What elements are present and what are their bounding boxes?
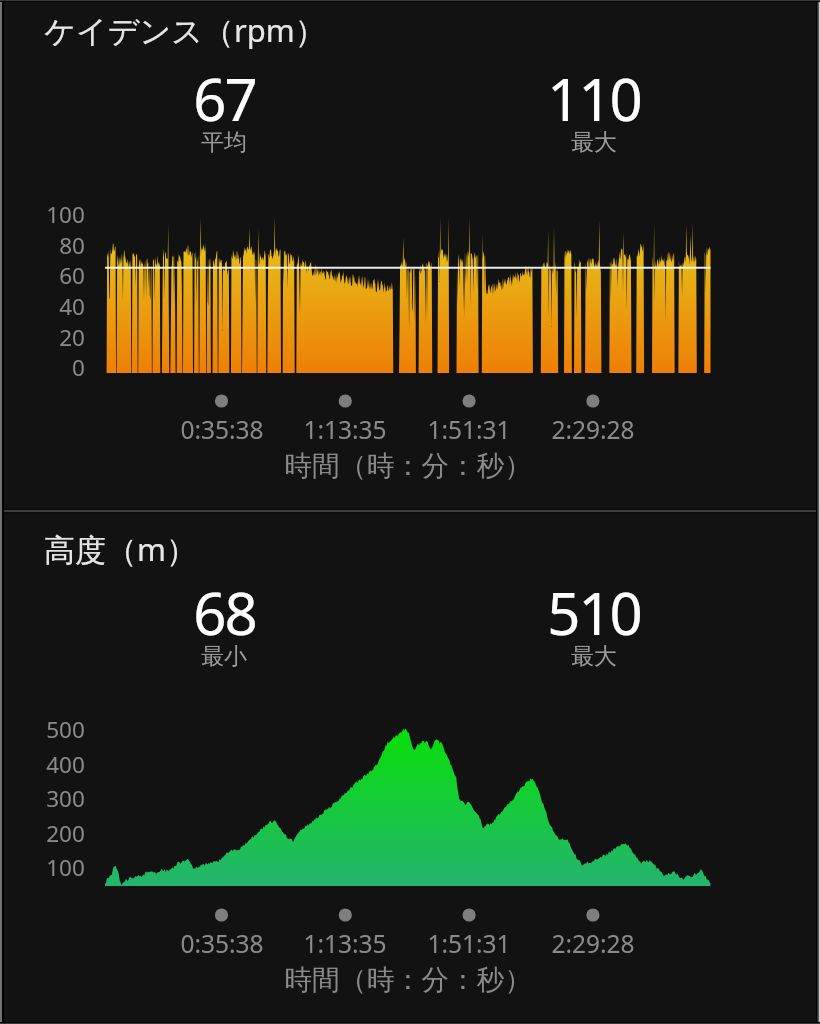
staticText: 510: [547, 573, 641, 652]
staticText: 300: [46, 783, 85, 814]
staticText: 1:51:31: [427, 413, 511, 446]
staticText: 2:29:28: [551, 927, 635, 960]
staticText: 1:13:35: [303, 927, 387, 960]
staticText: 0:35:38: [180, 413, 264, 446]
staticText: 時間（時：分：秒）: [284, 963, 532, 998]
staticText: 100: [46, 199, 85, 230]
button[interactable]: 高度のグラフ: [0, 511, 820, 1024]
staticText: 最小: [201, 642, 247, 671]
staticText: ケイデンス（rpm）: [44, 9, 326, 51]
staticText: 最大: [571, 642, 617, 671]
staticText: 68: [193, 573, 256, 652]
staticText: 0:35:38: [180, 927, 264, 960]
staticText: 最大: [571, 128, 617, 157]
staticText: 80: [59, 230, 85, 261]
staticText: 1:13:35: [303, 413, 387, 446]
staticText: 200: [46, 818, 85, 849]
staticText: 100: [46, 852, 85, 883]
button[interactable]: ケイデンスのグラフ: [0, 0, 820, 511]
staticText: 60: [59, 260, 85, 291]
staticText: 1:51:31: [427, 927, 511, 960]
staticText: 2:29:28: [551, 413, 635, 446]
staticText: 400: [46, 749, 85, 780]
staticText: 500: [46, 714, 85, 745]
staticText: 110: [547, 59, 641, 138]
staticText: 20: [59, 322, 85, 353]
staticText: 高度（m）: [44, 528, 197, 570]
staticText: 平均: [201, 128, 247, 157]
staticText: 0: [72, 352, 85, 383]
staticText: 時間（時：分：秒）: [284, 449, 532, 484]
staticText: 40: [59, 291, 85, 322]
staticText: 67: [193, 59, 256, 138]
